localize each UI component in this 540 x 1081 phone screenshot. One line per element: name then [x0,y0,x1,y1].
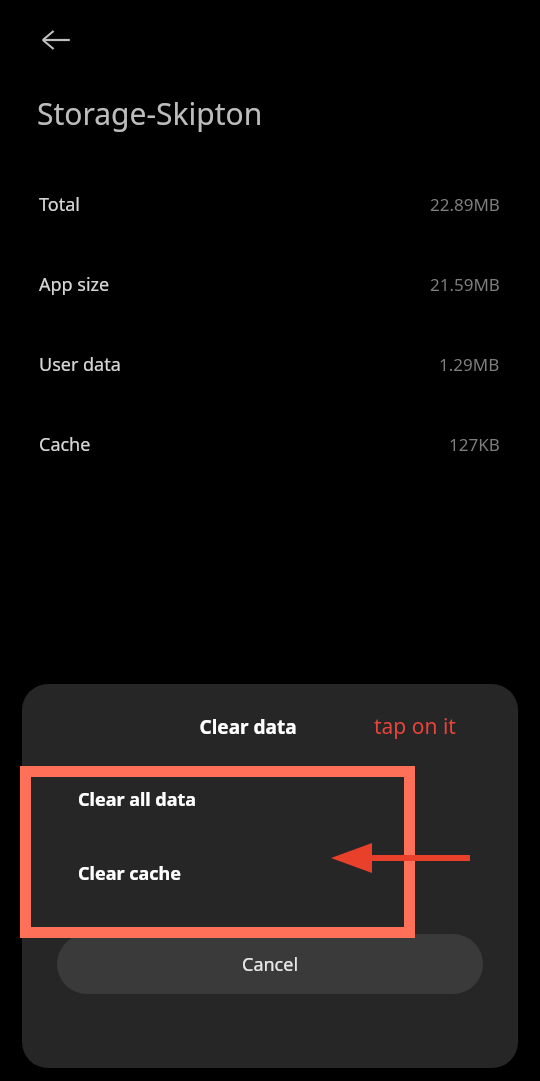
button[interactable]: User data [0,352,540,377]
staticText: Storage-Skipton [37,93,263,134]
button[interactable]: Back [28,12,84,68]
staticText: Clear cache [78,861,181,886]
staticText: 21.59MB [430,273,500,296]
staticText: tap on it [374,712,456,741]
button[interactable]: App size [0,272,540,297]
button[interactable]: Clear all data [22,762,518,836]
staticText: Clear data [199,714,297,740]
staticText: 127KB [449,433,500,456]
button[interactable]: Cancel [57,934,483,994]
staticText: 1.29MB [439,353,500,376]
staticText: Total [39,192,80,217]
button[interactable]: Total [0,192,540,217]
staticText: User data [39,352,121,377]
button[interactable]: Clear cache [22,836,518,910]
staticText: App size [39,272,110,297]
staticText: Clear all data [78,787,197,812]
staticText: Cache [39,432,91,457]
staticText: Cancel [242,952,299,977]
staticText: 22.89MB [430,193,500,216]
button[interactable]: Cache [0,432,540,457]
